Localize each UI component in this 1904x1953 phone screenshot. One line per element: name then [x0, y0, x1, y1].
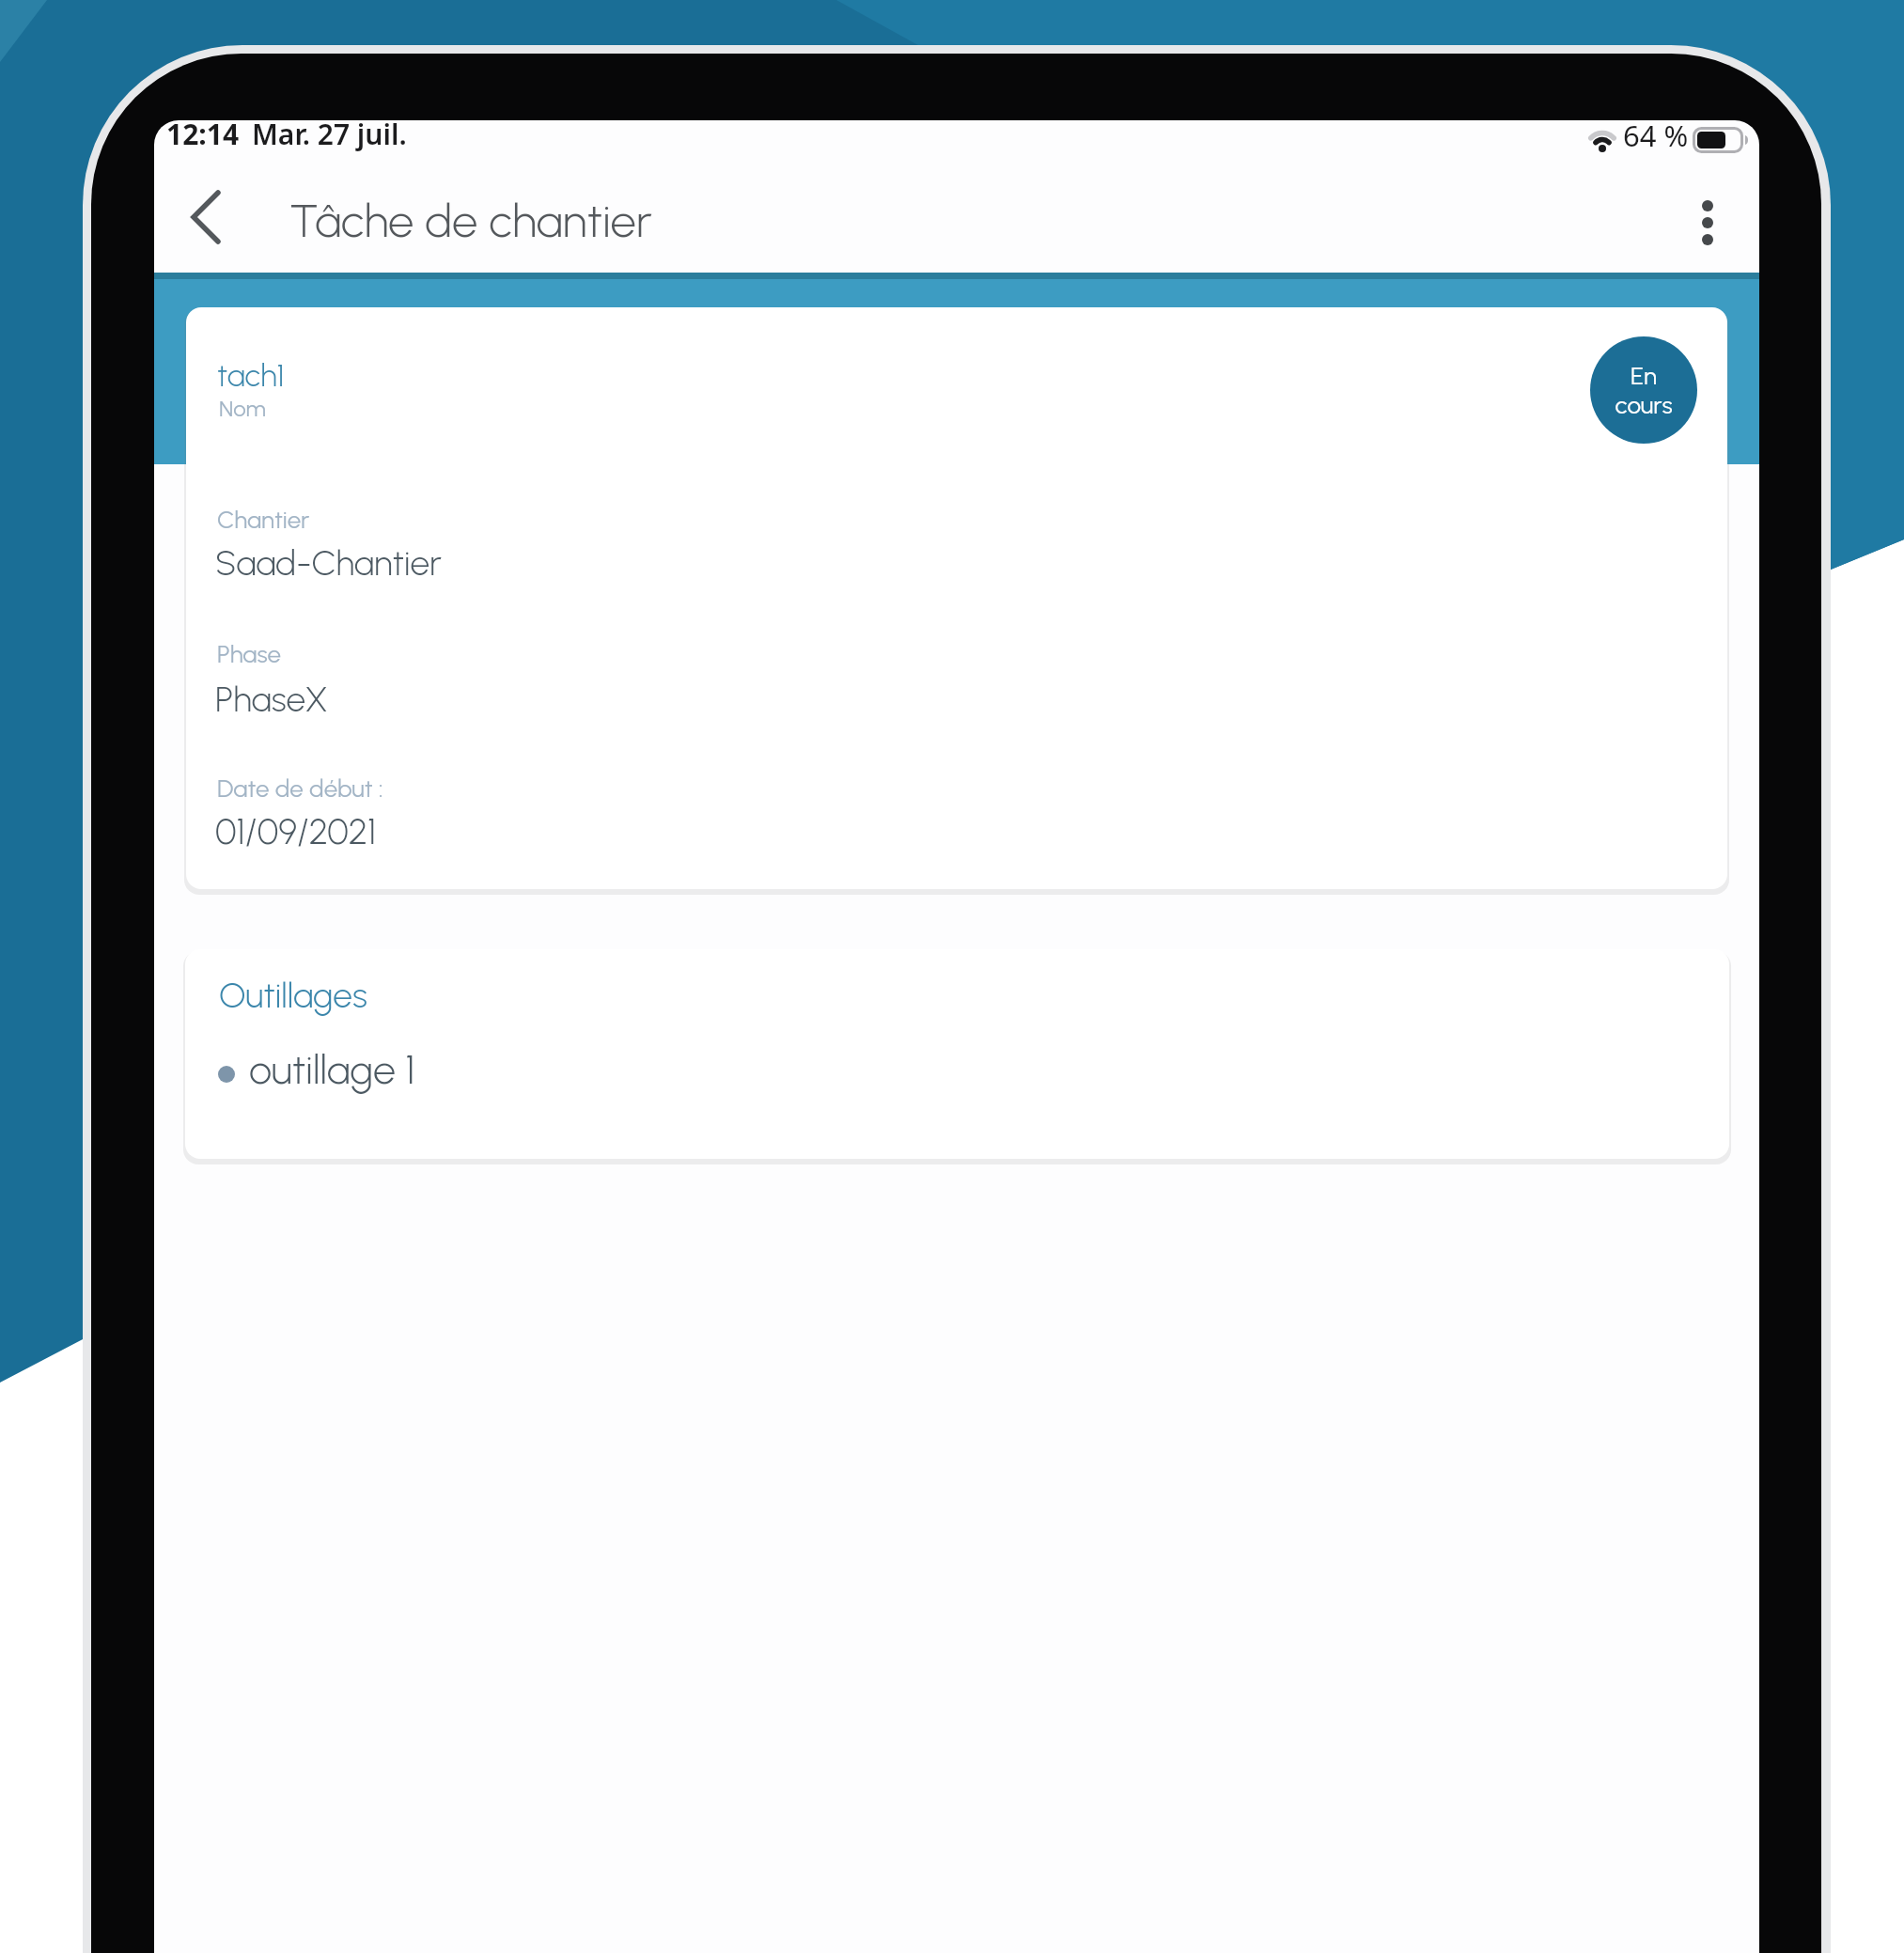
- staticText: 12:14: [166, 120, 240, 153]
- button[interactable]: En: [1590, 336, 1697, 444]
- staticText: Nom: [219, 395, 266, 422]
- staticText: 64 %: [1623, 120, 1689, 155]
- staticText: tach1: [217, 357, 285, 395]
- staticText: Phase: [217, 639, 282, 668]
- staticText: 01/09/2021: [215, 810, 377, 853]
- button[interactable]: [180, 180, 233, 255]
- staticText: En: [1631, 361, 1657, 390]
- staticText: outillage 1: [249, 1045, 415, 1094]
- staticText: PhaseX: [215, 679, 328, 720]
- staticText: Mar. 27 juil.: [252, 120, 407, 153]
- staticText: cours: [1615, 390, 1673, 419]
- staticText: Date de début :: [217, 773, 383, 803]
- staticText: Tâche de chantier: [289, 193, 652, 248]
- button[interactable]: [1686, 188, 1729, 250]
- staticText: Outillages: [219, 975, 367, 1016]
- staticText: Saad-Chantier: [215, 542, 442, 584]
- staticText: Chantier: [217, 505, 310, 534]
